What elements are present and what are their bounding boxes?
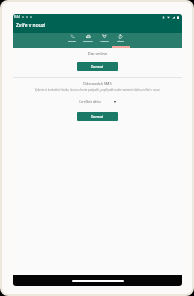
staticText: 8:34	[14, 15, 20, 19]
other: DÁRCE	[118, 34, 123, 39]
button[interactable]: DOPRAVA	[80, 33, 96, 48]
other: POMOC	[70, 34, 75, 39]
other: DOPRAVA	[86, 34, 91, 39]
staticText: Darovat	[91, 65, 104, 69]
staticText: Certifikát dárku	[79, 100, 101, 104]
button[interactable]: POMOC	[64, 33, 80, 48]
button[interactable]: Darovat	[77, 112, 118, 121]
staticText: Vyberte si konkrétní částku, kterou chce…	[19, 88, 176, 92]
staticText: Darovat	[91, 115, 104, 119]
other: ADOPCE	[102, 34, 107, 39]
staticText: DÁRCE	[117, 40, 124, 43]
button[interactable]: Certifikát dárku	[13, 98, 182, 105]
staticText: Zvíře v nouzi	[16, 22, 46, 29]
staticText: POMOC	[68, 40, 76, 43]
staticText: ADOPCE	[100, 40, 109, 43]
button[interactable]: Darovat	[77, 62, 118, 71]
button[interactable]: DÁRCE	[112, 33, 128, 48]
staticText: Dar online	[19, 51, 176, 56]
staticText: Dárcovská SMS	[19, 81, 176, 86]
staticText: DOPRAVA	[83, 40, 93, 43]
button[interactable]: ADOPCE	[96, 33, 112, 48]
